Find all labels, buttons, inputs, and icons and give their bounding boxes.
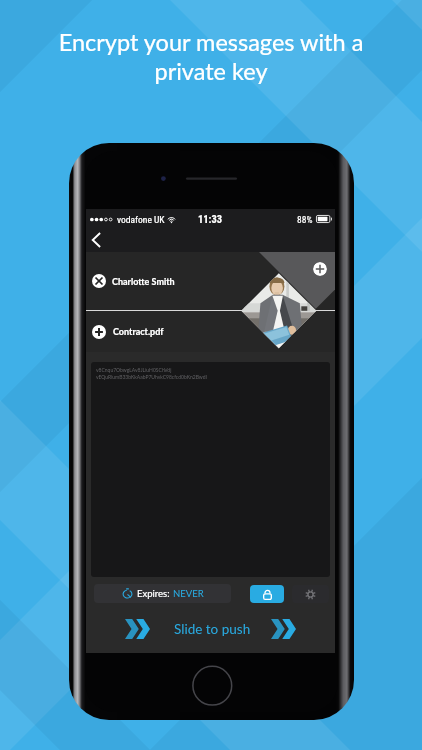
button[interactable]: Settings <box>292 585 329 603</box>
button[interactable]: Add contact <box>313 262 327 276</box>
button[interactable]: Expires: <box>94 584 231 603</box>
staticText: Charlotte Smith <box>112 276 175 287</box>
staticText: 11:33 <box>198 213 223 225</box>
button[interactable]: Back <box>86 229 335 252</box>
staticText: v8Cnqu7ObwgLAv8JLiuH0SChVdj vEQuRlumB33b… <box>96 367 207 380</box>
button[interactable]: Slide to push <box>86 609 335 649</box>
button[interactable]: Lock <box>250 585 284 603</box>
button[interactable]: Contract.pdf <box>92 311 335 352</box>
button[interactable]: Charlotte Smith <box>92 252 335 310</box>
staticText: 88% <box>297 214 313 225</box>
staticText: NEVER <box>173 588 204 599</box>
staticText: Slide to push <box>174 621 251 637</box>
staticText: Encrypt your messages with a private key <box>0 28 422 85</box>
staticText: vodafone UK <box>117 214 165 225</box>
staticText: Expires: <box>137 588 173 599</box>
staticText: Contract.pdf <box>113 326 164 337</box>
